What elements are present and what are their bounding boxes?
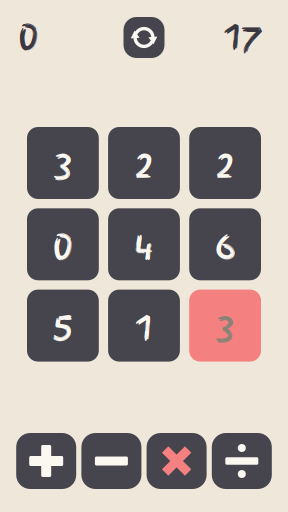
button[interactable]: Minus — [81, 433, 141, 489]
button[interactable]: 5 — [27, 290, 99, 362]
button[interactable]: 1 — [108, 290, 180, 362]
staticText: 1 — [135, 298, 152, 353]
staticText: 17 — [224, 7, 262, 62]
staticText: 4 — [134, 217, 154, 272]
button[interactable]: Divide — [212, 433, 272, 489]
button[interactable]: 4 — [108, 208, 180, 280]
button[interactable]: Plus — [16, 433, 76, 489]
button[interactable]: 2 — [108, 127, 180, 199]
button[interactable]: Times — [147, 433, 207, 489]
staticText: 0 — [18, 7, 39, 62]
staticText: 2 — [135, 135, 152, 190]
button[interactable]: New game — [123, 17, 164, 58]
button[interactable]: 0 — [27, 208, 99, 280]
staticText: 0 — [52, 217, 73, 272]
staticText: 6 — [215, 217, 236, 272]
staticText: 5 — [52, 298, 73, 353]
staticText: 3 — [216, 298, 234, 353]
button[interactable]: 3 — [189, 290, 261, 362]
staticText: 2 — [217, 135, 234, 190]
staticText: 3 — [54, 135, 72, 190]
button[interactable]: 3 — [27, 127, 99, 199]
button[interactable]: 2 — [189, 127, 261, 199]
button[interactable]: 6 — [189, 208, 261, 280]
